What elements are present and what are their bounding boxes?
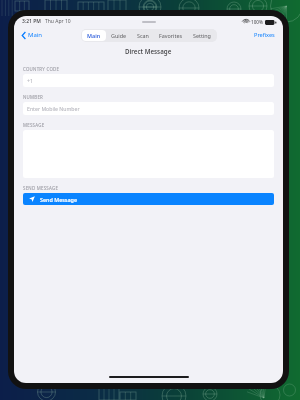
button[interactable]: Guide bbox=[106, 30, 132, 41]
button[interactable]: Scan bbox=[132, 30, 154, 41]
staticText: 100% bbox=[251, 19, 263, 25]
button[interactable]: Main bbox=[82, 30, 106, 41]
staticText: 3:21 PM bbox=[22, 18, 41, 25]
staticText: Favorites bbox=[159, 32, 183, 39]
staticText: Scan bbox=[137, 32, 149, 39]
button[interactable]: Main bbox=[20, 29, 45, 41]
staticText: Enter Mobile Number bbox=[27, 105, 80, 112]
staticText: Thu Apr 10 bbox=[45, 18, 71, 25]
staticText: SEND MESSAGE bbox=[23, 185, 59, 191]
staticText: Send Message bbox=[40, 196, 77, 203]
staticText: Main bbox=[87, 32, 101, 39]
button[interactable]: Favorites bbox=[154, 30, 188, 41]
button[interactable]: Send Message bbox=[23, 193, 274, 205]
button[interactable]: Prefixes bbox=[252, 29, 277, 41]
button[interactable]: Setting bbox=[188, 30, 216, 41]
staticText: COUNTRY CODE bbox=[23, 66, 60, 72]
staticText: +1 bbox=[27, 77, 33, 84]
staticText: Main bbox=[28, 31, 43, 39]
button[interactable]: Enter Mobile Number bbox=[23, 102, 274, 115]
staticText: MESSAGE bbox=[23, 122, 45, 128]
staticText: Direct Message bbox=[125, 47, 172, 55]
staticText: NUMBER bbox=[23, 94, 44, 100]
staticText: Prefixes bbox=[254, 31, 275, 39]
staticText: Setting bbox=[193, 32, 211, 39]
staticText: Guide bbox=[111, 32, 127, 39]
